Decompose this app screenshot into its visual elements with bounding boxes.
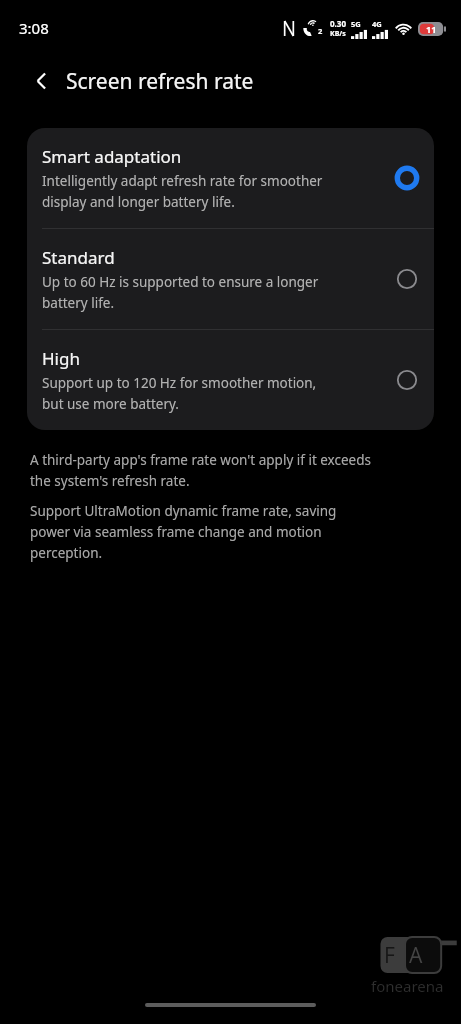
staticText: KB/s: [330, 29, 346, 39]
staticText: Up to 60 Hz is supported to ensure a lon…: [42, 273, 319, 312]
staticText: Screen refresh rate: [66, 67, 254, 96]
staticText: Smart adaptation: [42, 145, 182, 168]
staticText: Standard: [42, 246, 115, 269]
button[interactable]: Smart adaptation: [27, 128, 434, 228]
staticText: High: [42, 347, 80, 370]
staticText: 2: [318, 26, 323, 36]
staticText: A third-party app's frame rate won't app…: [30, 451, 371, 490]
staticText: 0.30: [330, 18, 346, 29]
staticText: 4G: [372, 19, 382, 29]
staticText: 3:08: [19, 18, 49, 38]
button[interactable]: Standard: [27, 229, 434, 329]
button[interactable]: Back: [21, 60, 63, 102]
staticText: Support UltraMotion dynamic frame rate, …: [30, 502, 337, 562]
staticText: A: [409, 941, 423, 970]
button[interactable]: High: [27, 330, 434, 430]
staticText: F: [384, 941, 395, 970]
staticText: Support up to 120 Hz for smoother motion…: [42, 374, 317, 413]
staticText: Intelligently adapt refresh rate for smo…: [42, 172, 323, 211]
staticText: 5G: [351, 19, 361, 29]
staticText: 11: [426, 23, 437, 35]
staticText: fonearena: [371, 976, 444, 996]
